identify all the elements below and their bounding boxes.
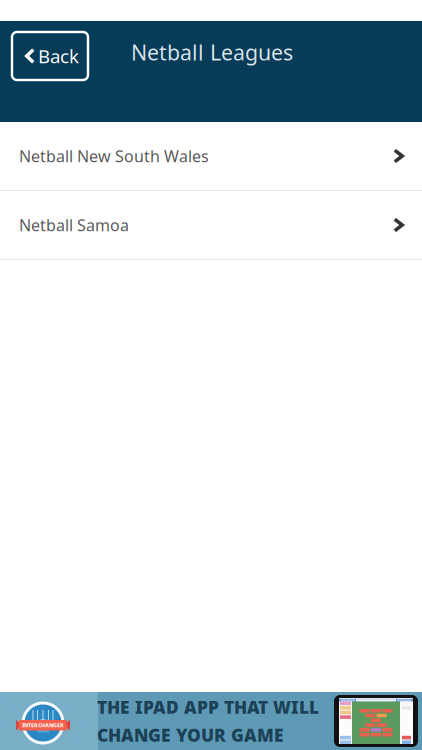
staticText: INTERCHANGER [22,722,64,729]
staticText: Netball New South Wales [19,145,209,167]
staticText: AUSTRALIAN RULES [31,726,55,729]
staticText: Back [38,44,79,68]
button[interactable]: AUSTRALIAN RULES [0,692,422,750]
staticText: THE IPAD APP THAT WILL [97,695,319,718]
button[interactable]: Back [12,32,88,80]
staticText: FOOTBALL [37,729,49,733]
button[interactable]: Netball Samoa [0,191,422,260]
staticText: CHANGE YOUR GAME [97,723,284,746]
staticText: Netball Leagues [131,38,293,66]
staticText: Netball Samoa [19,214,129,236]
button[interactable]: Netball New South Wales [0,122,422,191]
